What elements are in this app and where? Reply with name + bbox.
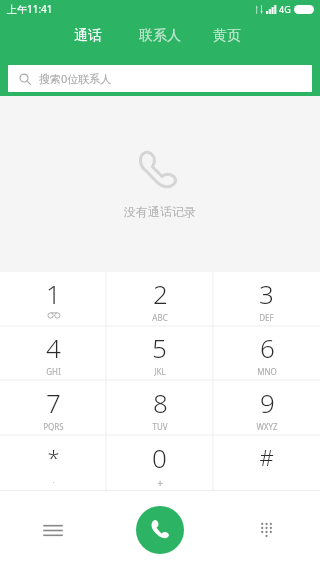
button[interactable]: Menu — [0, 491, 106, 569]
button[interactable]: 搜索0位联系人 — [8, 65, 312, 92]
staticText: 7 — [46, 385, 61, 420]
staticText: 6 — [260, 330, 275, 365]
button[interactable]: 9 — [213, 380, 320, 435]
staticText: TUV — [152, 421, 168, 431]
button[interactable]: 1 — [0, 272, 106, 326]
staticText: 4 — [46, 330, 61, 365]
button[interactable]: # — [213, 435, 320, 490]
button[interactable]: 7 — [0, 380, 106, 435]
staticText: WXYZ — [256, 421, 278, 431]
staticText: 上午11:41 — [7, 2, 53, 16]
staticText: 通话 — [74, 27, 102, 45]
staticText: 没有通话记录 — [124, 204, 196, 219]
button[interactable]: 8 — [106, 380, 213, 435]
staticText: ABC — [152, 312, 168, 322]
staticText: + — [157, 476, 163, 486]
button[interactable]: 联系人 — [133, 24, 187, 48]
staticText: 0 — [152, 440, 167, 475]
staticText: 搜索0位联系人 — [39, 71, 112, 86]
staticText: # — [259, 442, 274, 472]
staticText: GHI — [46, 366, 61, 376]
button[interactable]: 6 — [213, 326, 320, 380]
button[interactable]: 通话 — [68, 24, 108, 48]
staticText: 5 — [152, 330, 167, 365]
staticText: MNO — [257, 366, 277, 376]
button[interactable]: * — [0, 435, 106, 490]
staticText: PQRS — [43, 421, 64, 431]
staticText: JKL — [154, 366, 166, 376]
staticText: 1 — [46, 276, 61, 311]
staticText: 4G — [279, 3, 291, 15]
button[interactable]: Dialpad — [213, 491, 320, 569]
button[interactable]: 2 — [106, 272, 213, 326]
staticText: , — [52, 473, 55, 483]
staticText: 3 — [259, 276, 274, 311]
staticText: 8 — [153, 385, 168, 420]
staticText: 黄页 — [213, 27, 241, 45]
staticText: 9 — [260, 385, 275, 420]
staticText: 2 — [153, 276, 168, 311]
button[interactable]: Call — [136, 506, 184, 554]
button[interactable]: 5 — [106, 326, 213, 380]
button[interactable]: 3 — [213, 272, 320, 326]
button[interactable]: 黄页 — [207, 24, 247, 48]
staticText: DEF — [259, 312, 274, 322]
staticText: 联系人 — [139, 27, 181, 45]
button[interactable]: 4 — [0, 326, 106, 380]
staticText: * — [47, 442, 60, 472]
button[interactable]: 0 — [106, 435, 213, 490]
